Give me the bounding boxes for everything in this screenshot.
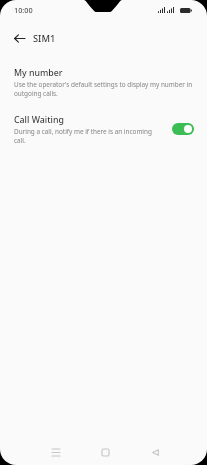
button[interactable]: Back xyxy=(4,23,34,53)
staticText: Use the operator's default settings to d… xyxy=(14,80,194,98)
button[interactable]: Call waiting toggle xyxy=(172,123,194,135)
staticText: 10:00 xyxy=(14,5,33,15)
staticText: During a call, notify me if there is an … xyxy=(14,127,158,145)
button[interactable]: Back xyxy=(140,439,170,465)
staticText: SIM1 xyxy=(33,32,56,45)
button[interactable]: Recents xyxy=(41,439,71,465)
button[interactable]: My number xyxy=(0,67,207,98)
staticText: My number xyxy=(14,67,63,79)
button[interactable]: Home xyxy=(90,439,120,465)
staticText: Call Waiting xyxy=(14,114,64,126)
button[interactable]: Call Waiting xyxy=(0,114,207,145)
